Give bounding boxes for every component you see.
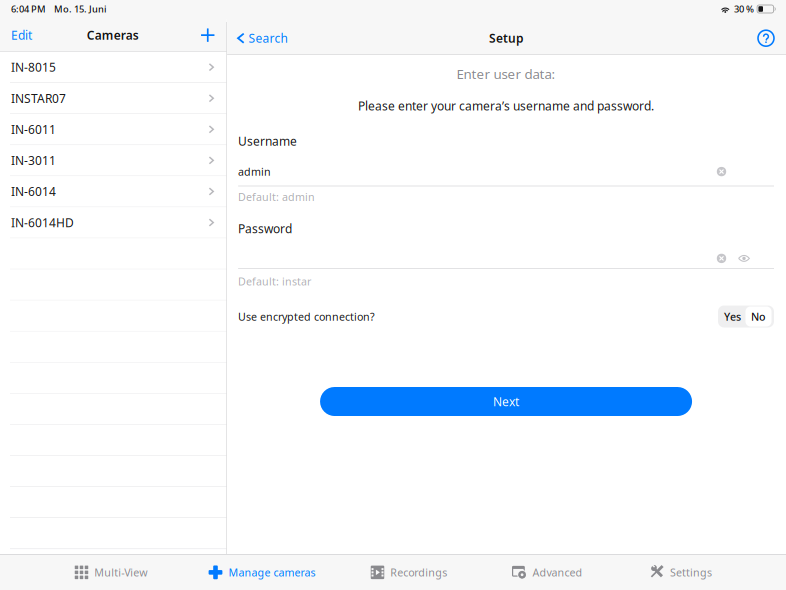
button[interactable]: No (745, 306, 771, 326)
staticText: Username (238, 133, 297, 149)
staticText: Use encrypted connection? (238, 309, 375, 324)
staticText: 6:04 PM (11, 3, 46, 15)
button[interactable]: Next (320, 387, 692, 416)
button[interactable]: Add camera (193, 19, 226, 51)
staticText: 30 % (734, 3, 754, 15)
button[interactable]: IN-6014 (0, 176, 226, 207)
button[interactable]: Search (227, 22, 295, 54)
staticText: IN-6011 (11, 121, 56, 137)
button[interactable]: Clear password (716, 253, 727, 264)
button[interactable]: Manage cameras (209, 555, 315, 590)
staticText: Default: admin (238, 190, 315, 204)
button[interactable]: IN-6014HD (0, 207, 226, 238)
button[interactable]: Show password (738, 254, 750, 262)
staticText: Mo. 15. Juni (54, 3, 107, 15)
staticText: IN-8015 (11, 59, 56, 75)
staticText: Password (238, 221, 292, 237)
staticText: Advanced (532, 565, 582, 579)
button[interactable]: IN-8015 (0, 52, 226, 83)
staticText: Multi-View (94, 565, 147, 579)
staticText: Edit (11, 27, 32, 43)
staticText: Cameras (87, 27, 139, 43)
button[interactable]: INSTAR07 (0, 83, 226, 114)
button[interactable]: Multi-View (75, 555, 147, 590)
button[interactable]: IN-6011 (0, 114, 226, 145)
staticText: Manage cameras (228, 565, 315, 579)
button[interactable]: Settings (651, 555, 712, 590)
staticText: Please enter your camera’s username and … (358, 98, 654, 114)
staticText: Settings (670, 565, 712, 579)
staticText: Yes (724, 309, 741, 324)
staticText: IN-3011 (11, 152, 56, 168)
staticText: IN-6014 (11, 183, 56, 199)
staticText: Search (248, 30, 287, 46)
button[interactable]: IN-3011 (0, 145, 226, 176)
staticText: Enter user data: (456, 65, 555, 83)
button[interactable]: Help (750, 22, 786, 54)
staticText: IN-6014HD (11, 215, 74, 230)
button[interactable]: Edit (0, 19, 40, 51)
staticText: No (751, 309, 766, 324)
button[interactable]: Clear username (716, 166, 727, 177)
staticText: INSTAR07 (11, 90, 66, 106)
staticText: Setup (489, 30, 524, 46)
staticText: Default: instar (238, 274, 311, 289)
staticText: Next (493, 393, 519, 409)
button[interactable]: Recordings (371, 555, 447, 590)
staticText: admin (238, 164, 271, 179)
button[interactable]: Yes (719, 305, 745, 327)
button[interactable]: Advanced (512, 555, 582, 590)
staticText: Recordings (390, 565, 447, 579)
